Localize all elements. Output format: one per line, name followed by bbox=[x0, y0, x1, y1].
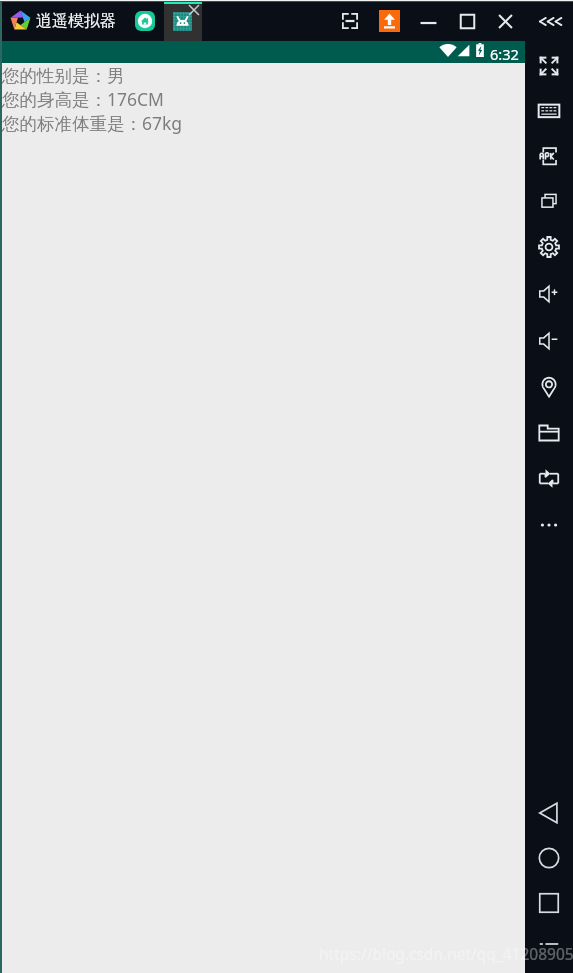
button[interactable]: Rotate bbox=[525, 468, 573, 490]
button[interactable]: Home bbox=[525, 847, 573, 869]
button[interactable]: Volume up bbox=[525, 283, 573, 305]
button[interactable]: Android app tab bbox=[164, 0, 202, 41]
button[interactable]: Upload APK bbox=[379, 10, 400, 32]
button[interactable]: Recents bbox=[525, 892, 573, 914]
staticText: 6:32 bbox=[490, 44, 519, 64]
button[interactable]: Fullscreen bbox=[525, 55, 573, 77]
staticText: 逍遥模拟器 bbox=[36, 11, 116, 31]
button[interactable]: Location bbox=[525, 376, 573, 398]
button[interactable]: Keyboard bbox=[525, 100, 573, 122]
button[interactable]: Volume down bbox=[525, 330, 573, 352]
button[interactable]: Install APK bbox=[525, 145, 573, 167]
staticText: 您的性别是：男 bbox=[2, 65, 125, 87]
button[interactable]: Home bbox=[135, 11, 155, 31]
button[interactable]: Settings bbox=[525, 236, 573, 258]
button[interactable]: Maximize bbox=[452, 6, 482, 36]
staticText: https://blog.csdn.net/qq_41208905 bbox=[319, 943, 573, 964]
button[interactable]: Back bbox=[525, 802, 573, 824]
button[interactable]: Minimize bbox=[413, 6, 443, 36]
button[interactable]: Shared folder bbox=[525, 422, 573, 444]
button[interactable]: Menu bbox=[525, 933, 573, 955]
staticText: 您的标准体重是：67kg bbox=[2, 111, 183, 135]
button[interactable]: Close bbox=[490, 6, 520, 36]
staticText: 您的身高是：176CM bbox=[2, 87, 164, 111]
button[interactable]: More bbox=[525, 514, 573, 536]
button[interactable]: Screenshot bbox=[335, 6, 365, 36]
button[interactable]: Collapse sidebar bbox=[534, 6, 564, 36]
button[interactable]: Multi window bbox=[525, 190, 573, 212]
